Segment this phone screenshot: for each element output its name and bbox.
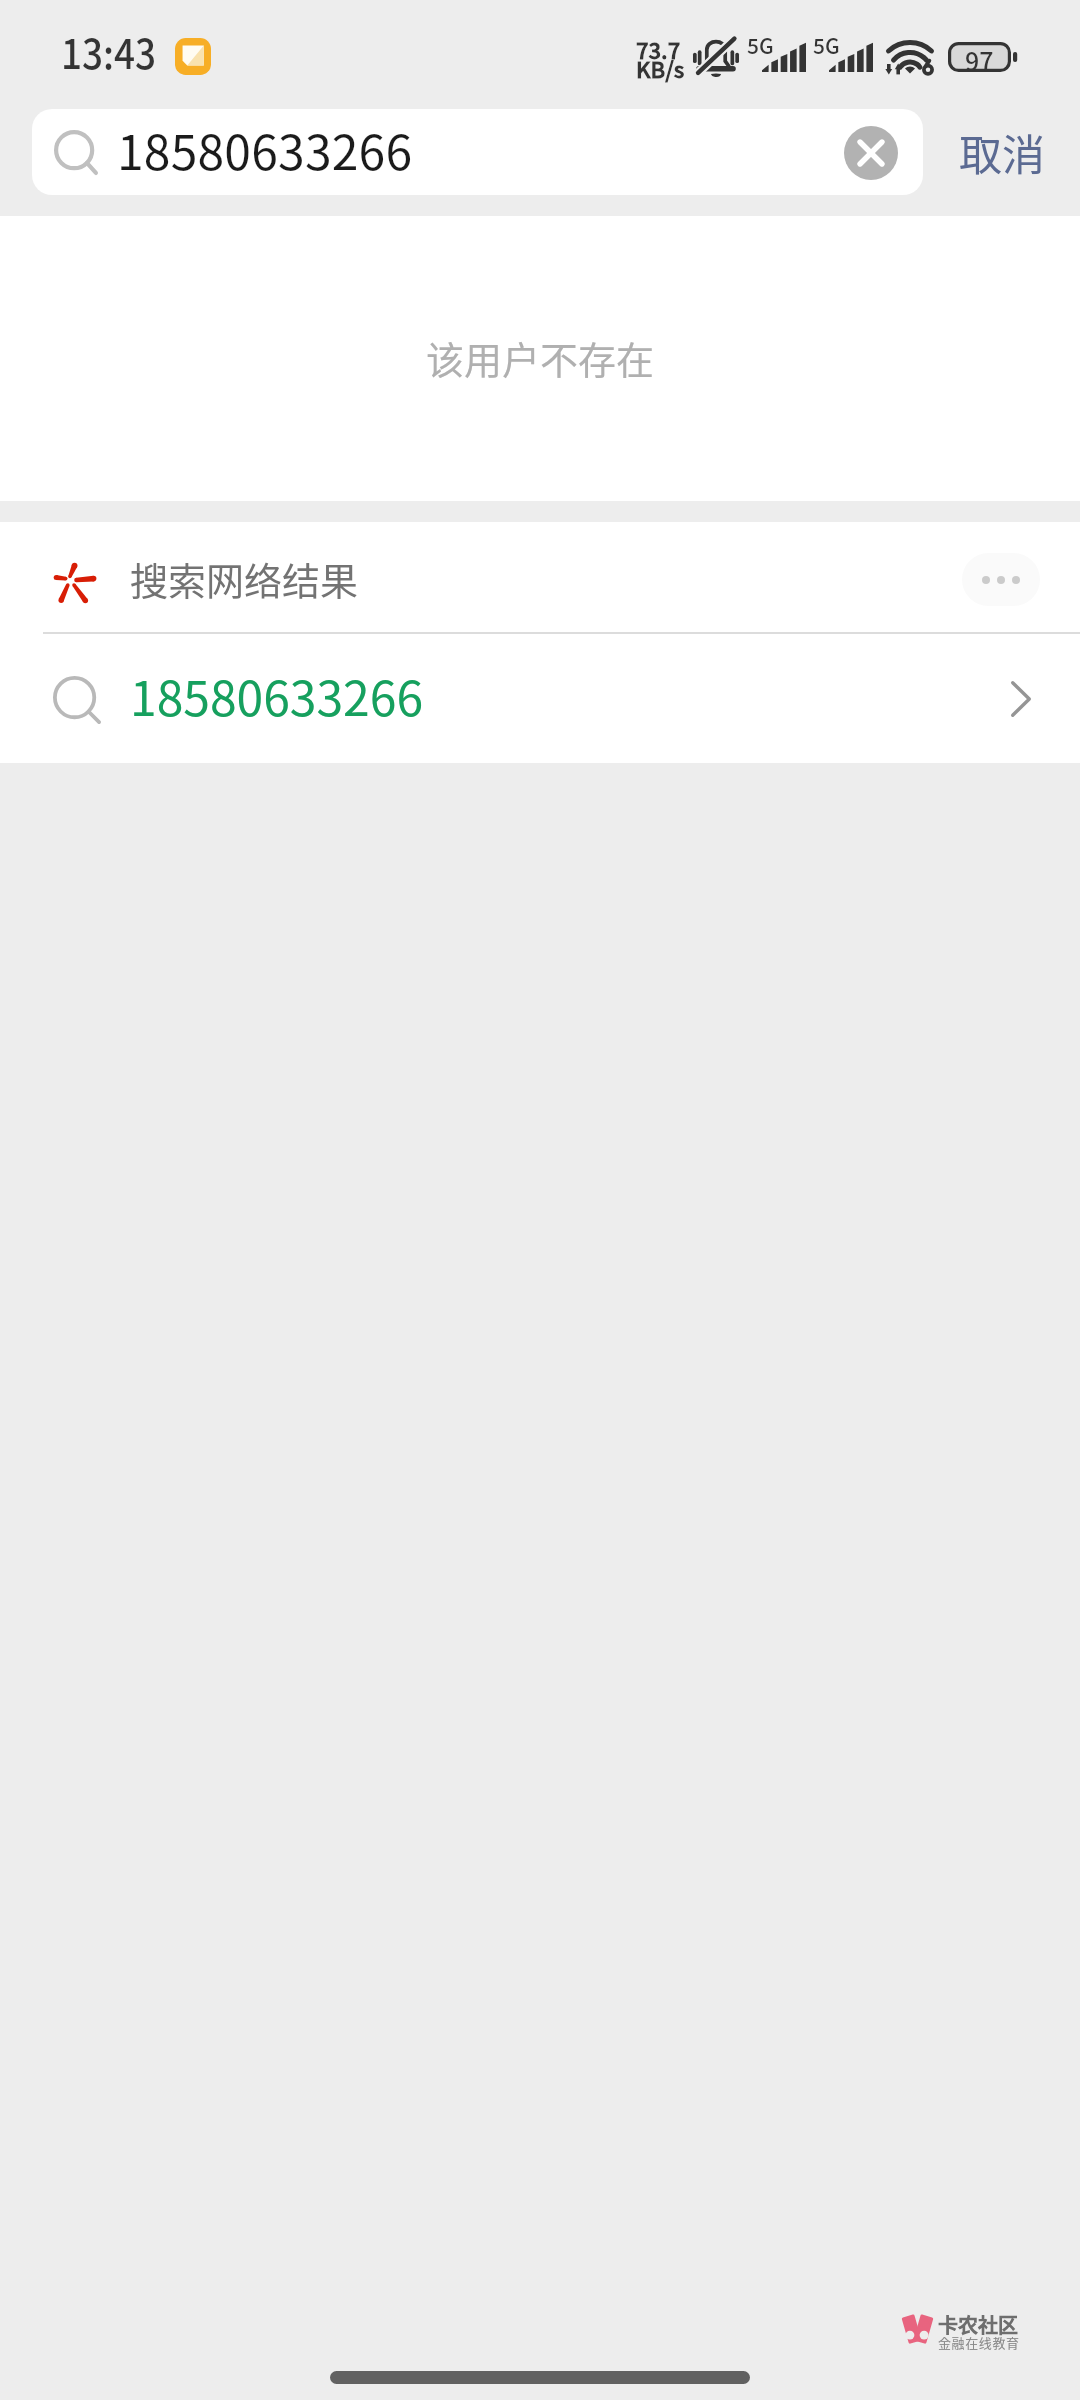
staticText: 卡农社区 — [938, 2310, 1018, 2339]
staticText: 该用户不存在 — [426, 330, 655, 385]
button[interactable]: Clear search — [844, 126, 898, 180]
staticText: 5G — [813, 30, 840, 60]
staticText: 97 — [965, 42, 994, 72]
button[interactable] — [0, 634, 1080, 763]
staticText: KB/s — [636, 52, 685, 84]
staticText: 金融在线教育 — [938, 2333, 1020, 2352]
button[interactable] — [32, 109, 923, 195]
staticText: 取消 — [959, 121, 1045, 183]
button[interactable]: More options — [962, 553, 1040, 606]
staticText: 5G — [747, 30, 774, 60]
staticText: 73.7 — [636, 33, 681, 65]
staticText: 18580633266 — [117, 114, 413, 184]
staticText: 18580633266 — [130, 660, 424, 730]
staticText: 13:43 — [61, 21, 156, 80]
button[interactable] — [0, 522, 1080, 633]
staticText: 搜索网络结果 — [130, 551, 359, 606]
button[interactable]: 取消 — [941, 113, 1063, 191]
